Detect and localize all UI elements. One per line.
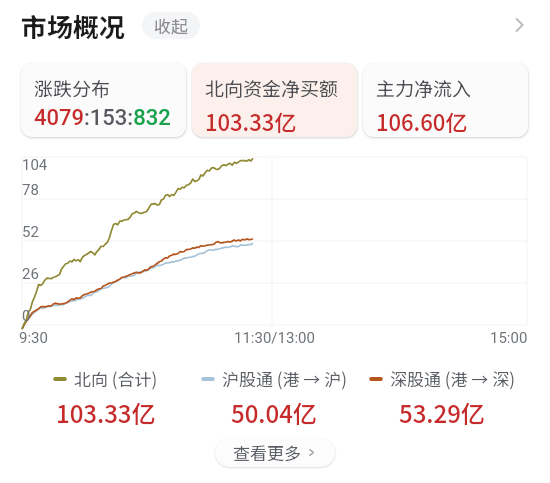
staticText: 78 bbox=[22, 181, 39, 199]
staticText: 103.33亿 bbox=[56, 395, 156, 430]
button[interactable]: 主力净流入 bbox=[363, 63, 528, 137]
button[interactable]: 北向资金净买额 bbox=[192, 63, 357, 137]
staticText: 深股通 (港 → 深) bbox=[390, 366, 515, 391]
staticText: 市场概况 bbox=[21, 7, 126, 45]
button[interactable]: More bbox=[506, 11, 534, 39]
button[interactable]: 收起 bbox=[142, 12, 200, 39]
staticText: 11:30/13:00 bbox=[234, 329, 315, 347]
staticText: 15:00 bbox=[490, 329, 528, 347]
staticText: 4079:153:832 bbox=[34, 105, 171, 131]
staticText: 沪股通 (港 → 沪) bbox=[222, 366, 347, 391]
staticText: 53.29亿 bbox=[399, 395, 485, 430]
button[interactable]: 涨跌分布 bbox=[21, 63, 186, 137]
staticText: 50.04亿 bbox=[231, 395, 317, 430]
staticText: 104 bbox=[22, 156, 48, 174]
staticText: 北向 (合计) bbox=[74, 366, 158, 391]
staticText: 涨跌分布 bbox=[34, 74, 111, 102]
staticText: 0 bbox=[22, 307, 31, 325]
staticText: 52 bbox=[22, 223, 39, 241]
button[interactable]: 查看更多 bbox=[215, 438, 335, 467]
staticText: 9:30 bbox=[19, 329, 48, 347]
staticText: 北向资金净买额 bbox=[205, 74, 339, 102]
staticText: 26 bbox=[22, 265, 39, 283]
staticText: 查看更多 bbox=[233, 440, 301, 465]
staticText: 主力净流入 bbox=[376, 74, 472, 102]
staticText: 106.60亿 bbox=[376, 105, 468, 137]
staticText: 收起 bbox=[154, 13, 188, 38]
staticText: 103.33亿 bbox=[205, 105, 297, 137]
